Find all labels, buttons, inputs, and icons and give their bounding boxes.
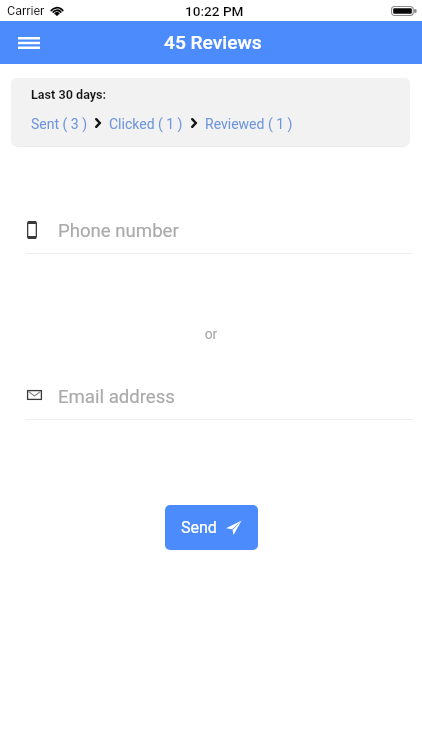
staticText: Email address bbox=[58, 386, 175, 408]
button[interactable]: Reviewed ( 1 ) bbox=[205, 116, 293, 132]
staticText: Phone number bbox=[58, 220, 179, 242]
staticText: 45 Reviews bbox=[164, 31, 262, 54]
button[interactable]: Phone number bbox=[0, 213, 422, 253]
button[interactable]: Clicked ( 1 ) bbox=[109, 116, 183, 132]
staticText: Last 30 days: bbox=[31, 87, 107, 102]
staticText: Sent ( 3 ) bbox=[31, 116, 87, 132]
staticText: 10:22 PM bbox=[185, 3, 244, 19]
staticText: Send bbox=[181, 518, 217, 537]
staticText: Carrier bbox=[7, 3, 45, 18]
staticText: or bbox=[0, 326, 422, 342]
button[interactable]: Sent ( 3 ) bbox=[31, 116, 87, 132]
staticText: Clicked ( 1 ) bbox=[109, 116, 183, 132]
button[interactable]: Email address bbox=[0, 379, 422, 419]
staticText: Reviewed ( 1 ) bbox=[205, 116, 293, 132]
button[interactable]: Send bbox=[165, 505, 258, 550]
button[interactable]: Open navigation menu bbox=[7, 22, 49, 64]
